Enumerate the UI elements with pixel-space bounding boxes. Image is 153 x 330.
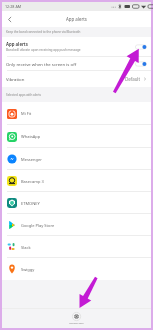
- button[interactable]: Vibration: [2, 71, 151, 87]
- button[interactable]: Basecamp 3: [2, 170, 151, 192]
- staticText: Mi Fit: [21, 111, 32, 116]
- staticText: Band will vibrate upon receiving app pus…: [6, 48, 81, 52]
- button[interactable]: Manage apps: [61, 311, 92, 326]
- button[interactable]: Swiggy: [2, 258, 151, 280]
- button[interactable]: Back: [2, 12, 16, 26]
- staticText: WhatsApp: [21, 134, 41, 139]
- button[interactable]: Toggle: [134, 41, 147, 53]
- staticText: Selected apps with alerts: [6, 93, 41, 97]
- staticText: Default: [125, 76, 141, 82]
- staticText: Only receive when the screen is off: [6, 61, 134, 67]
- staticText: 12:28 AM: [5, 4, 22, 9]
- button[interactable]: Toggle: [134, 58, 147, 70]
- staticText: Swiggy: [21, 267, 35, 272]
- staticText: ETMONEY: [21, 201, 40, 206]
- staticText: App alerts: [66, 16, 87, 22]
- staticText: Messenger: [21, 157, 42, 162]
- staticText: Slack: [21, 245, 31, 250]
- button[interactable]: Slack: [2, 236, 151, 258]
- button[interactable]: WhatsApp: [2, 125, 151, 148]
- staticText: Keep the band connected to the phone via…: [6, 30, 81, 34]
- button[interactable]: Mi Fit: [2, 102, 151, 125]
- staticText: Manage apps: [69, 322, 84, 325]
- staticText: Vibration: [6, 76, 125, 82]
- button[interactable]: Only receive when the screen is off: [2, 57, 151, 70]
- button[interactable]: Google Play Store: [2, 214, 151, 236]
- staticText: Basecamp 3: [21, 179, 44, 184]
- staticText: Google Play Store: [21, 223, 55, 228]
- button[interactable]: App alerts: [2, 37, 151, 56]
- button[interactable]: Messenger: [2, 148, 151, 170]
- button[interactable]: ETMONEY: [2, 192, 151, 214]
- staticText: App alerts: [6, 41, 28, 47]
